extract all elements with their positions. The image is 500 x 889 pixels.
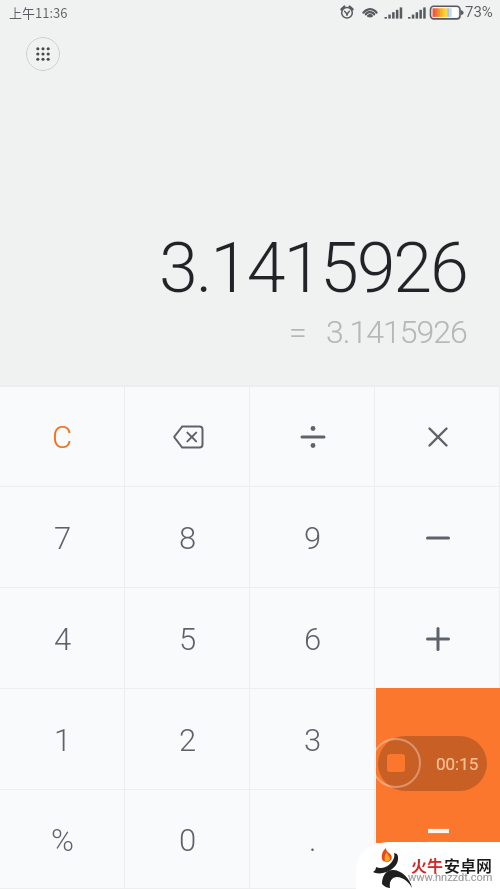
button[interactable]: Multiply — [375, 387, 500, 487]
staticText: 3.1415926 — [159, 227, 467, 309]
staticText: 5 — [179, 621, 197, 657]
staticText: 4 — [54, 621, 72, 657]
button[interactable]: 5 — [125, 588, 250, 689]
button[interactable]: 7 — [0, 487, 125, 588]
button[interactable]: Clear — [0, 387, 125, 487]
staticText: 00:15 — [436, 754, 479, 774]
button[interactable]: 0 — [125, 790, 250, 889]
button[interactable]: Plus — [375, 588, 500, 689]
staticText: 0 — [179, 822, 197, 858]
button[interactable]: Menu — [26, 37, 60, 71]
staticText: 3 — [304, 722, 322, 758]
button[interactable]: Divide — [250, 387, 375, 487]
staticText: 6 — [304, 621, 322, 657]
button[interactable]: 8 — [125, 487, 250, 588]
staticText: 火牛 — [411, 853, 444, 876]
button[interactable]: Equals — [375, 689, 500, 790]
staticText: C — [52, 419, 73, 455]
button[interactable]: 6 — [250, 588, 375, 689]
staticText: 8 — [179, 520, 197, 556]
staticText: 上午11:36 — [9, 3, 68, 22]
button[interactable]: . — [250, 790, 375, 889]
button[interactable]: 4 — [0, 588, 125, 689]
staticText: 7 — [54, 520, 72, 556]
staticText: 2 — [179, 722, 197, 758]
staticText: 9 — [304, 520, 322, 556]
button[interactable]: 9 — [250, 487, 375, 588]
button[interactable]: 3 — [250, 689, 375, 790]
button[interactable]: Minus — [375, 487, 500, 588]
staticText: . — [309, 822, 317, 858]
button[interactable]: Backspace — [125, 387, 250, 487]
staticText: www.hnzzdt.com — [408, 871, 493, 884]
button[interactable]: Equals — [375, 790, 500, 889]
button[interactable]: Stop recording — [378, 736, 487, 791]
staticText: = 3.1415926 — [289, 313, 467, 351]
staticText: 73% — [465, 3, 493, 21]
button[interactable]: 1 — [0, 689, 125, 790]
staticText: 安卓网 — [444, 853, 493, 876]
staticText: 1 — [54, 722, 72, 758]
button[interactable]: 2 — [125, 689, 250, 790]
button[interactable]: % — [0, 790, 125, 889]
staticText: % — [51, 822, 74, 858]
